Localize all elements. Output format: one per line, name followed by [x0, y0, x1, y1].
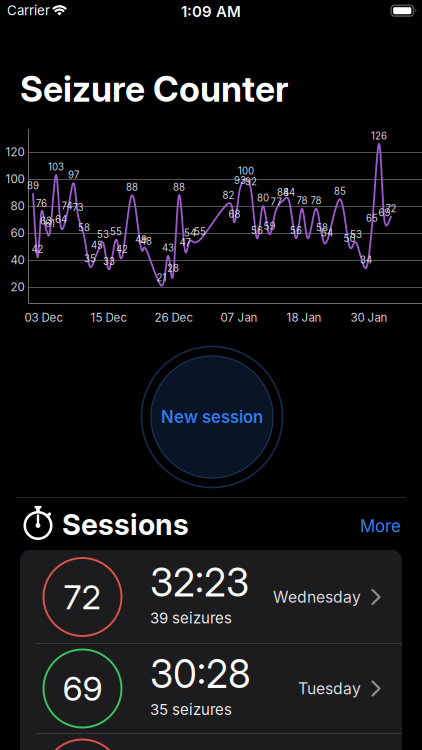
- staticText: 92: [245, 176, 257, 188]
- staticText: 54: [184, 227, 196, 239]
- staticText: 103: [48, 161, 64, 173]
- staticText: 03 Dec: [24, 310, 63, 324]
- staticText: Tuesday: [298, 679, 361, 698]
- staticText: 53: [97, 229, 109, 240]
- staticText: 80: [257, 192, 269, 204]
- staticText: 76: [36, 198, 47, 209]
- staticText: 15 Dec: [90, 310, 127, 324]
- staticText: 69: [378, 207, 390, 219]
- staticText: 64: [55, 214, 67, 225]
- staticText: 74: [61, 200, 72, 212]
- staticText: 56: [290, 225, 302, 236]
- staticText: 1:09 AM: [181, 2, 241, 21]
- staticText: 89: [27, 180, 39, 192]
- staticText: 61: [45, 218, 55, 229]
- staticText: 48: [140, 235, 152, 247]
- staticText: 43: [162, 242, 174, 254]
- staticText: 35: [84, 253, 96, 265]
- staticText: 42: [31, 243, 43, 255]
- button[interactable]: 69: [20, 643, 402, 733]
- staticText: Seizure Counter: [20, 68, 288, 110]
- staticText: 18 Jan: [286, 310, 321, 324]
- staticText: 30:28: [150, 651, 251, 697]
- staticText: 60: [10, 226, 24, 240]
- staticText: 21: [156, 272, 166, 283]
- staticText: 68: [228, 208, 240, 220]
- staticText: 100: [238, 165, 254, 177]
- staticText: 88: [173, 181, 185, 193]
- staticText: Sessions: [62, 507, 189, 542]
- staticText: 32:23: [150, 559, 249, 606]
- staticText: 58: [316, 222, 328, 234]
- staticText: 97: [68, 169, 79, 181]
- staticText: 56: [251, 225, 263, 236]
- staticText: 65: [366, 212, 378, 224]
- staticText: 40: [10, 253, 24, 267]
- staticText: 50: [343, 233, 355, 244]
- button[interactable]: 72: [20, 552, 402, 642]
- staticText: 100: [5, 172, 24, 186]
- staticText: 47: [179, 237, 190, 248]
- staticText: 78: [296, 195, 307, 207]
- staticText: 63: [40, 215, 52, 227]
- staticText: 88: [126, 181, 138, 193]
- staticText: New session: [161, 407, 263, 427]
- staticText: 33: [103, 256, 115, 267]
- staticText: 39 seizures: [150, 609, 232, 627]
- staticText: 28: [167, 262, 179, 274]
- staticText: 55: [110, 226, 122, 238]
- staticText: 120: [5, 145, 24, 159]
- staticText: 93: [234, 175, 246, 186]
- staticText: 20: [10, 280, 24, 294]
- staticText: 53: [350, 229, 362, 240]
- staticText: 55: [194, 226, 206, 238]
- staticText: 35 seizures: [150, 700, 232, 719]
- staticText: 82: [222, 189, 234, 201]
- staticText: 84: [277, 187, 289, 198]
- staticText: Wednesday: [273, 587, 361, 606]
- staticText: 54: [321, 227, 333, 239]
- button[interactable]: New session: [139, 344, 285, 490]
- staticText: 77: [270, 196, 281, 208]
- staticText: 45: [91, 239, 103, 251]
- staticText: 26 Dec: [154, 310, 193, 324]
- staticText: Carrier: [7, 2, 50, 19]
- staticText: 34: [360, 254, 372, 266]
- staticText: 85: [334, 185, 346, 197]
- staticText: 49: [135, 234, 147, 246]
- staticText: 72: [63, 577, 101, 617]
- staticText: 30 Jan: [350, 310, 387, 324]
- staticText: 69: [62, 668, 102, 709]
- staticText: 58: [78, 222, 90, 234]
- staticText: 72: [385, 203, 396, 215]
- button[interactable]: More: [321, 516, 401, 536]
- staticText: 80: [10, 199, 24, 213]
- staticText: 84: [283, 187, 295, 198]
- staticText: 78: [310, 195, 321, 207]
- staticText: 59: [263, 220, 275, 232]
- staticText: 42: [116, 243, 128, 255]
- staticText: More: [360, 516, 401, 536]
- staticText: 126: [371, 130, 387, 142]
- staticText: 73: [72, 202, 83, 213]
- staticText: 07 Jan: [220, 310, 257, 324]
